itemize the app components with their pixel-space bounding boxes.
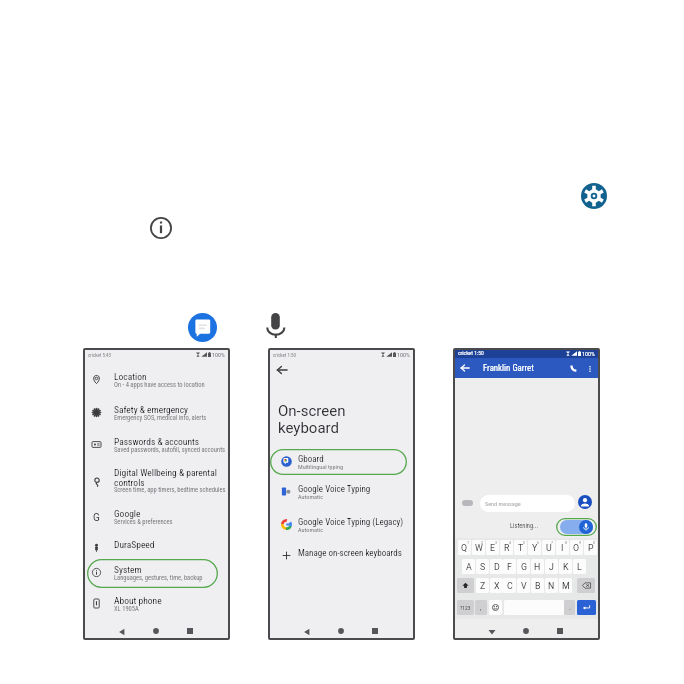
button[interactable]: Recents xyxy=(184,625,196,637)
button[interactable]: Recents xyxy=(369,625,381,637)
button[interactable]: Home xyxy=(520,625,532,637)
button[interactable]: Emoji xyxy=(489,600,502,615)
button[interactable]: Messages xyxy=(188,313,217,342)
staticText: Digital Wellbeing & parental xyxy=(114,467,217,478)
staticText: 5 xyxy=(523,541,526,545)
button[interactable]: DuraSpeed xyxy=(84,539,229,552)
button[interactable]: A xyxy=(462,559,475,574)
button[interactable]: Settings xyxy=(581,183,607,209)
button[interactable]: Back xyxy=(115,625,128,638)
staticText: Google xyxy=(114,508,141,519)
button[interactable]: System xyxy=(84,564,229,586)
staticText: Automatic xyxy=(298,526,324,533)
button[interactable]: J xyxy=(545,559,558,574)
button[interactable]: W xyxy=(472,540,485,555)
button[interactable]: Voice input xyxy=(579,520,593,534)
button[interactable]: Google Voice Typing (Legacy) xyxy=(269,517,414,538)
staticText: I xyxy=(561,543,564,553)
button[interactable]: T xyxy=(514,540,527,555)
button[interactable]: G xyxy=(517,559,530,574)
staticText: Google Voice Typing (Legacy) xyxy=(298,517,404,528)
staticText: 100% xyxy=(397,351,410,358)
button[interactable]: More options xyxy=(584,363,595,374)
button[interactable]: Manage on-screen keyboards xyxy=(269,548,414,561)
button[interactable]: L xyxy=(573,559,586,574)
staticText: Emergency SOS, medical info, alerts xyxy=(114,414,207,422)
staticText: Send message xyxy=(485,500,521,507)
button[interactable]: Microphone xyxy=(266,313,286,338)
button[interactable]: M xyxy=(559,578,572,593)
button[interactable]: S xyxy=(476,559,489,574)
button[interactable]: About phone xyxy=(84,595,229,617)
staticText: keyboard xyxy=(278,419,339,437)
button[interactable]: Back xyxy=(300,625,313,638)
staticText: ?123 xyxy=(460,605,471,611)
staticText: 1 xyxy=(467,541,470,545)
button[interactable]: B xyxy=(531,578,544,593)
button[interactable]: Z xyxy=(476,578,489,593)
button[interactable]: D xyxy=(490,559,503,574)
staticText: W xyxy=(475,543,483,553)
button[interactable]: Contact xyxy=(578,495,592,509)
button[interactable]: H xyxy=(531,559,544,574)
button[interactable]: Comma xyxy=(475,600,487,615)
staticText: Manage on-screen keyboards xyxy=(298,548,402,559)
staticText: Multilingual typing xyxy=(298,463,343,470)
staticText: Services & preferences xyxy=(114,518,173,526)
staticText: M xyxy=(562,581,570,591)
staticText: S xyxy=(480,562,486,572)
staticText: Google Voice Typing xyxy=(298,484,371,495)
staticText: DuraSpeed xyxy=(114,539,155,550)
staticText: Q xyxy=(461,543,468,553)
button[interactable]: V xyxy=(517,578,530,593)
staticText: T xyxy=(518,543,524,553)
staticText: P xyxy=(588,543,594,553)
button[interactable]: Period xyxy=(564,600,575,615)
button[interactable]: Gboard xyxy=(269,454,414,475)
button[interactable]: Back xyxy=(276,364,288,376)
button[interactable]: X xyxy=(490,578,503,593)
button[interactable]: I xyxy=(556,540,569,555)
staticText: Listening... xyxy=(510,522,539,530)
staticText: Y xyxy=(532,543,538,553)
button[interactable]: Enter xyxy=(577,600,596,615)
button[interactable]: Call xyxy=(567,362,579,374)
staticText: cricket 1:50 xyxy=(273,352,297,358)
button[interactable]: U xyxy=(542,540,555,555)
button[interactable]: Symbols xyxy=(457,600,474,615)
button[interactable]: P xyxy=(584,540,597,555)
button[interactable]: Y xyxy=(528,540,541,555)
button[interactable]: C xyxy=(503,578,516,593)
staticText: 3 xyxy=(495,541,498,545)
button[interactable]: Backspace xyxy=(577,578,595,593)
button[interactable]: Send message xyxy=(480,495,575,512)
button[interactable]: Recents xyxy=(554,625,566,637)
button[interactable]: Back xyxy=(459,362,471,374)
staticText: Languages, gestures, time, backup xyxy=(114,574,203,582)
staticText: 100% xyxy=(582,350,595,357)
button[interactable]: Digital Wellbeing & parental xyxy=(84,467,229,499)
button[interactable]: Back xyxy=(485,625,498,638)
button[interactable]: Info xyxy=(150,217,172,239)
button[interactable]: Home xyxy=(150,625,162,637)
staticText: 9 xyxy=(579,541,582,545)
staticText: H xyxy=(534,562,541,572)
button[interactable]: K xyxy=(559,559,572,574)
button[interactable]: Google Voice Typing xyxy=(269,484,414,505)
button[interactable]: F xyxy=(503,559,516,574)
button[interactable]: R xyxy=(500,540,513,555)
staticText: R xyxy=(504,543,510,553)
button[interactable]: Home xyxy=(335,625,347,637)
button[interactable]: N xyxy=(545,578,558,593)
button[interactable]: Passwords & accounts xyxy=(84,436,229,458)
button[interactable]: Shift xyxy=(457,578,474,593)
button[interactable]: O xyxy=(570,540,583,555)
button[interactable]: G xyxy=(84,508,229,530)
staticText: Gboard xyxy=(298,454,324,465)
button[interactable]: Location xyxy=(84,371,229,393)
staticText: XL 1905A xyxy=(114,605,139,613)
button[interactable]: Safety & emergency xyxy=(84,404,229,426)
button[interactable]: E xyxy=(486,540,499,555)
button[interactable]: Q xyxy=(458,540,471,555)
